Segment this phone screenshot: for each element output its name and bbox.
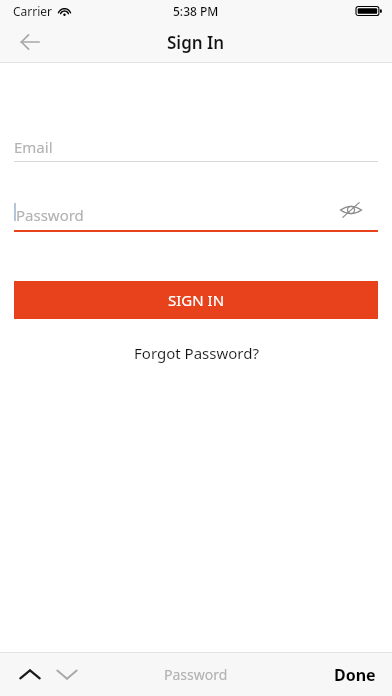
staticText: 5:38 PM: [173, 3, 219, 19]
staticText: Sign In: [167, 31, 225, 54]
button[interactable]: Back: [8, 22, 52, 62]
button[interactable]: Previous field: [8, 653, 52, 696]
staticText: Email: [14, 137, 53, 157]
button[interactable]: Show password: [330, 189, 372, 231]
staticText: SIGN IN: [168, 290, 225, 310]
staticText: Carrier: [13, 3, 53, 19]
button[interactable]: Next field: [45, 653, 89, 696]
staticText: Password: [164, 665, 228, 684]
staticText: Password: [16, 205, 84, 225]
staticText: Forgot Password?: [134, 343, 259, 363]
staticText: Done: [334, 664, 376, 686]
button[interactable]: SIGN IN: [14, 281, 378, 319]
button[interactable]: Done: [324, 655, 386, 695]
button[interactable]: Forgot Password?: [0, 340, 392, 366]
